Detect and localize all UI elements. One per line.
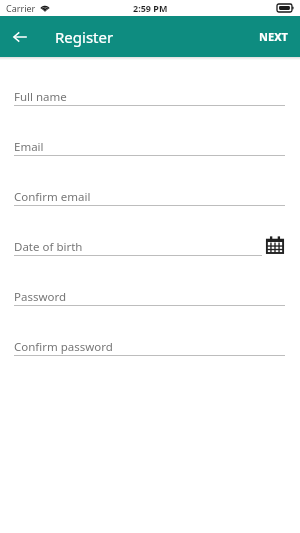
staticText: Register [55,27,114,47]
button[interactable]: Password [0,280,300,330]
staticText: Full name [14,89,67,105]
staticText: NEXT [259,29,288,44]
staticText: 2:59 PM [133,2,168,14]
staticText: Confirm email [14,189,91,205]
staticText: Carrier [6,2,36,14]
staticText: Date of birth [14,239,83,255]
staticText: Email [14,139,44,155]
button[interactable]: Email [0,130,300,180]
button[interactable]: Back [0,17,40,57]
staticText: Confirm password [14,339,113,355]
staticText: Password [14,289,67,305]
button[interactable]: Confirm email [0,180,300,230]
button[interactable]: Full name [0,80,300,130]
button[interactable]: Pick date [263,232,287,256]
button[interactable]: NEXT [247,21,300,52]
button[interactable]: Confirm password [0,330,300,380]
button[interactable]: Date of birth [0,230,300,280]
